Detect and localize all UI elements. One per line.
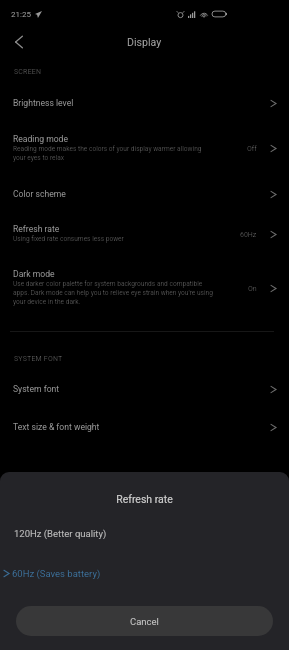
staticText: Using fixed rate consumes less power [13,235,124,243]
staticText: Display [127,36,162,48]
staticText: Reading mode [13,134,69,144]
button[interactable]: Cancel [16,606,273,636]
button[interactable]: 60Hz (Saves battery) [0,565,289,581]
staticText: System font [13,384,60,394]
staticText: Off [247,145,257,153]
staticText: SYSTEM FONT [14,355,63,363]
button[interactable]: 120Hz (Better quality) [0,525,289,541]
staticText: On [248,285,257,293]
button[interactable]: Dark mode [0,269,289,307]
staticText: Color scheme [13,189,66,199]
button[interactable]: Reading mode [0,134,289,162]
button[interactable]: Back [8,31,30,53]
button[interactable]: Brightness level [0,91,289,115]
staticText: Text size & font weight [13,422,100,432]
staticText: 21:25 [11,10,31,19]
button[interactable]: Refresh rate [0,224,289,244]
staticText: Refresh rate [0,493,289,505]
staticText: Refresh rate [13,224,60,234]
staticText: Cancel [130,616,159,627]
staticText: Brightness level [13,98,74,108]
staticText: Dark mode [13,269,55,279]
staticText: Reading mode makes the colors of your di… [13,145,213,161]
staticText: Use darker color palette for system back… [13,280,213,305]
button[interactable]: Text size & font weight [0,415,289,439]
staticText: SCREEN [14,68,42,76]
staticText: 60Hz [240,231,257,239]
button[interactable]: System font [0,377,289,401]
staticText: 120Hz (Better quality) [14,528,107,539]
button[interactable]: Color scheme [0,182,289,206]
staticText: 60Hz (Saves battery) [12,568,101,579]
